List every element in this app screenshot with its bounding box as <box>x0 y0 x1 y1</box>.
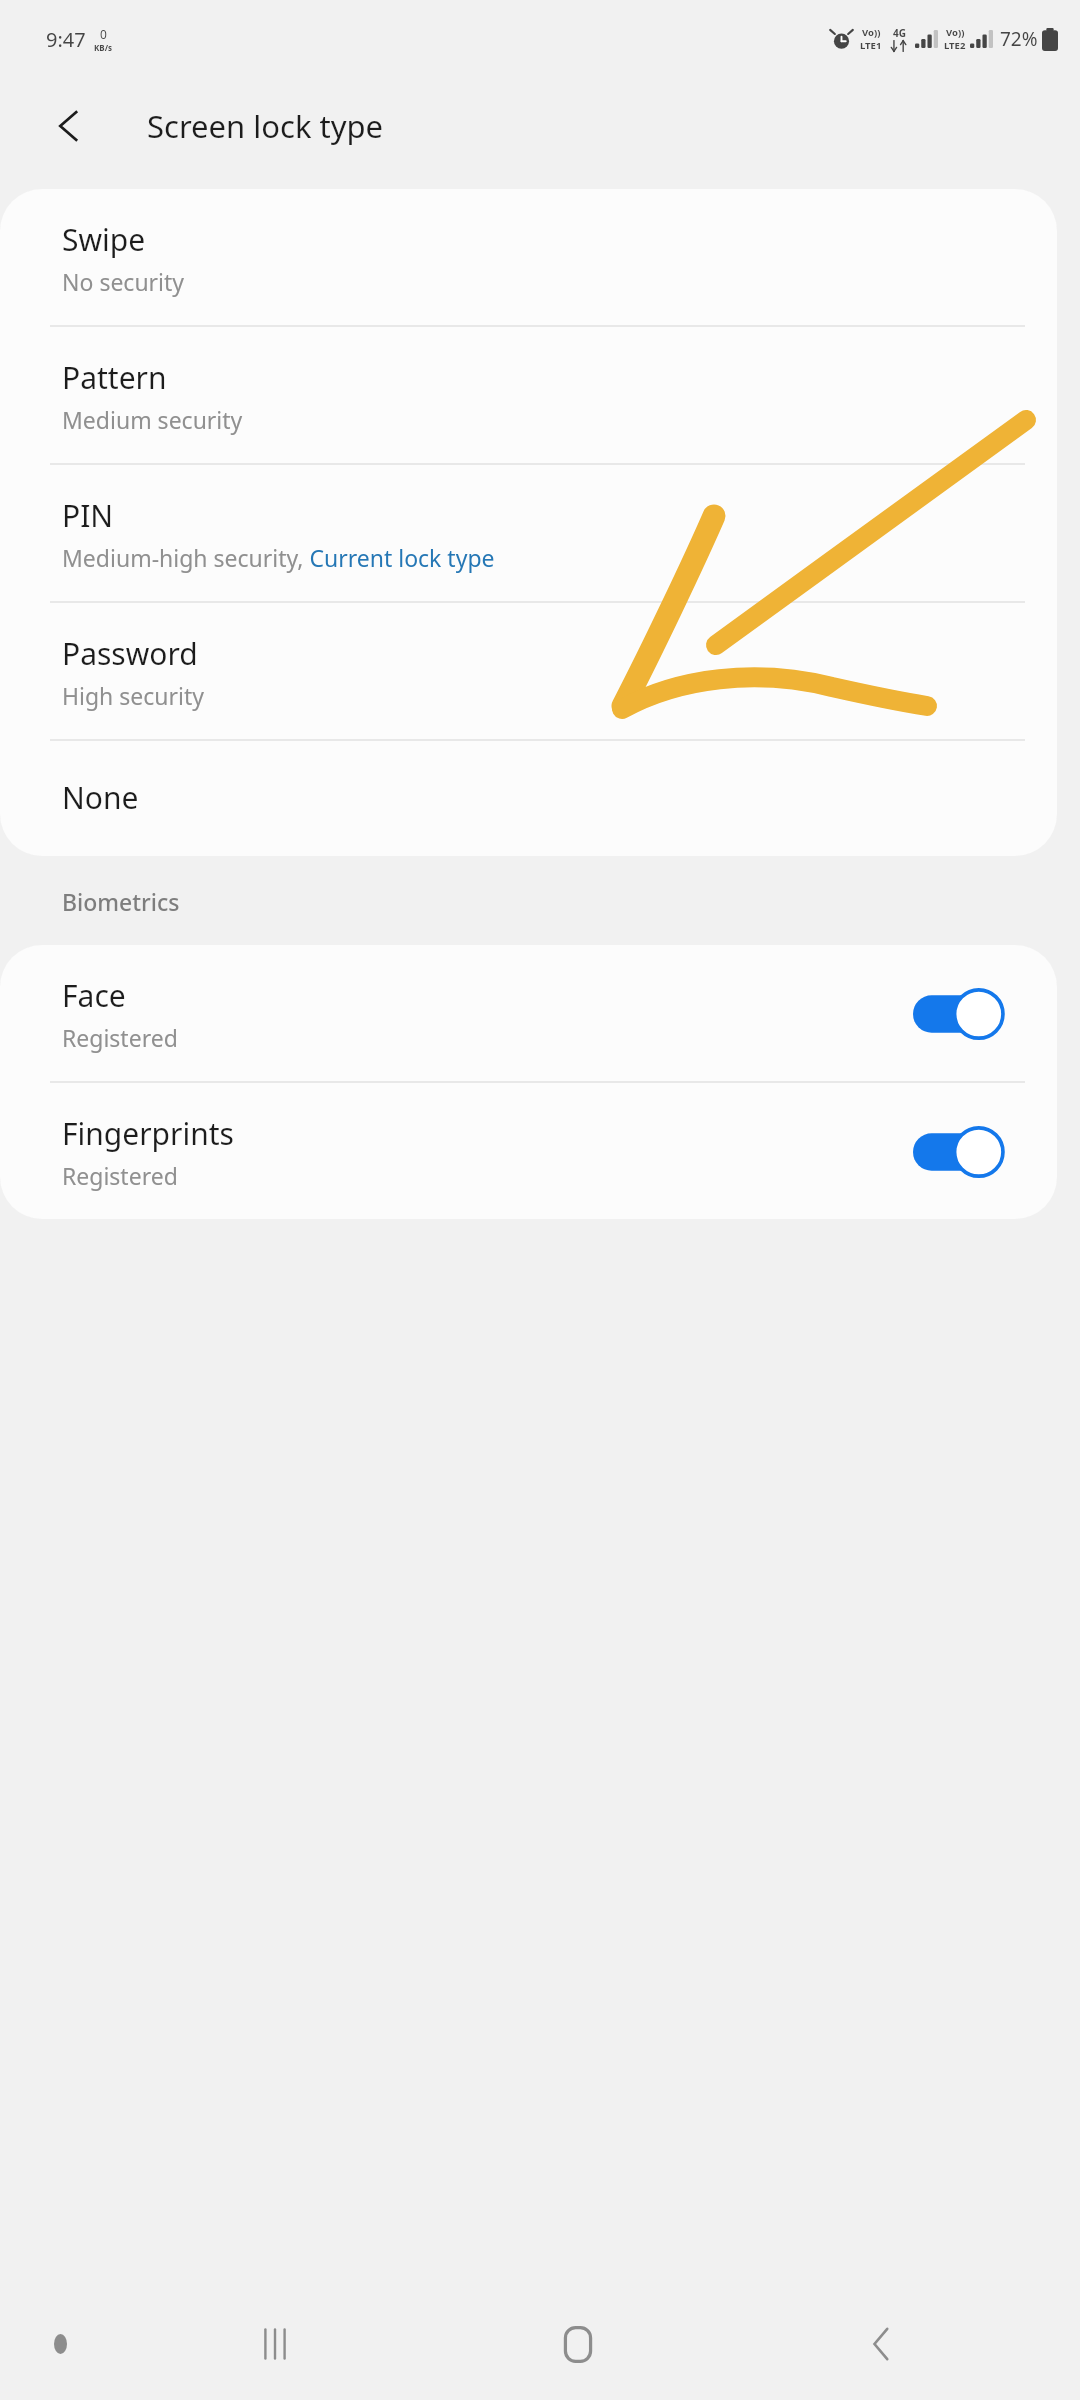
staticText: Password <box>62 633 198 674</box>
button[interactable]: Toggle on <box>913 988 1005 1040</box>
button[interactable]: Face <box>0 945 1057 1081</box>
staticText: No security <box>62 266 185 297</box>
button[interactable]: Toggle on <box>913 1126 1005 1178</box>
staticText: 4G <box>893 26 906 40</box>
staticText: High security <box>62 680 205 711</box>
button[interactable]: Recents <box>124 2288 426 2400</box>
staticText: Fingerprints <box>62 1113 234 1154</box>
staticText: None <box>62 777 139 818</box>
staticText: LTE2 <box>944 39 966 52</box>
button[interactable]: PIN <box>0 465 1057 601</box>
staticText: 9:47 <box>46 26 86 53</box>
staticText: 72% <box>1000 26 1038 52</box>
button[interactable]: None <box>0 741 1057 856</box>
staticText: LTE1 <box>860 39 882 52</box>
button[interactable]: Fingerprints <box>0 1083 1057 1219</box>
staticText: Swipe <box>62 219 146 260</box>
staticText: Registered <box>62 1022 178 1053</box>
button[interactable]: Pattern <box>0 327 1057 463</box>
staticText: Biometrics <box>62 886 180 917</box>
staticText: Pattern <box>62 357 167 398</box>
staticText: PIN <box>62 495 114 536</box>
button[interactable]: Swipe <box>0 189 1057 325</box>
staticText: Registered <box>62 1160 178 1191</box>
button[interactable]: Back <box>729 2288 1032 2400</box>
staticText: Screen lock type <box>147 105 384 147</box>
button[interactable]: Password <box>0 603 1057 739</box>
staticText: Vo)) <box>862 26 881 39</box>
staticText: Vo)) <box>946 26 965 39</box>
staticText: Medium-high security, Current lock type <box>62 542 495 573</box>
staticText: Face <box>62 975 126 1016</box>
staticText: KB/s <box>94 42 112 53</box>
staticText: Medium security <box>62 404 243 435</box>
button[interactable]: Home <box>426 2288 729 2400</box>
staticText: 0 <box>100 26 107 42</box>
button[interactable]: Navigate up <box>34 90 106 162</box>
